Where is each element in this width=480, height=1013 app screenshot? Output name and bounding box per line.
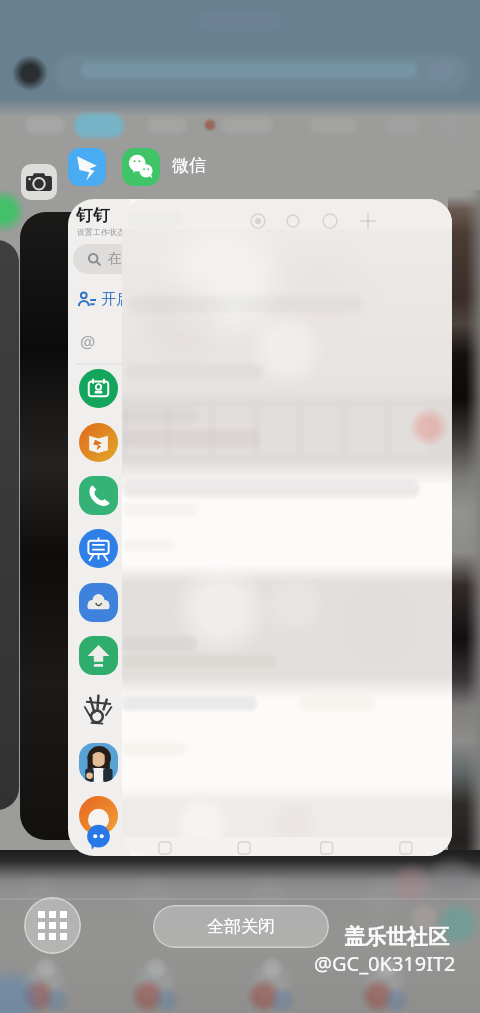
staticText: 全部关闭 — [207, 916, 275, 937]
staticText: 设置工作状态 — [77, 227, 125, 237]
staticText: @ — [80, 330, 96, 353]
button[interactable]: 钉钉 — [68, 199, 392, 856]
button[interactable]: DingTalk — [68, 148, 106, 186]
button[interactable]: WeChat — [122, 148, 160, 186]
button[interactable]: Camera — [21, 164, 57, 200]
button[interactable] — [122, 199, 452, 856]
button[interactable]: All apps — [24, 897, 81, 954]
button[interactable] — [0, 240, 19, 810]
staticText: @GC_0K319IT2 — [314, 950, 456, 977]
button[interactable]: 全部关闭 — [153, 905, 329, 948]
staticText: 微信 — [172, 155, 206, 176]
staticText: 钉钉 — [76, 205, 110, 226]
staticText: 开启 — [101, 290, 131, 309]
staticText: 盖乐世社区 — [344, 924, 449, 950]
staticText: 在 — [108, 250, 122, 268]
button[interactable] — [20, 212, 220, 840]
